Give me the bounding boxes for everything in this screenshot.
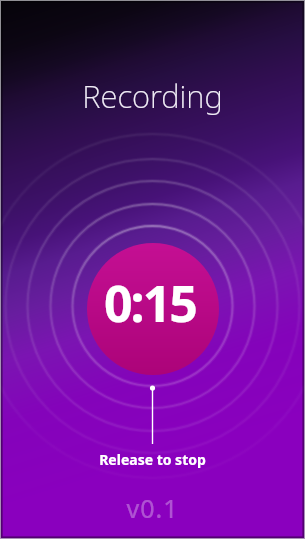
staticText: Release to stop [99,450,206,469]
button[interactable]: 0:15 [87,243,219,375]
staticText: 0:15 [104,269,196,337]
staticText: v0.1 [126,491,179,525]
staticText: Recording [82,75,223,117]
